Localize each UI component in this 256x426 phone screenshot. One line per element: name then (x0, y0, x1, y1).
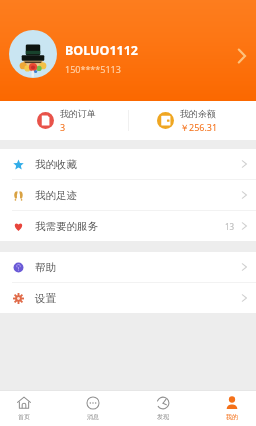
staticText: 我需要的服务 (35, 220, 98, 233)
staticText: 13 (225, 221, 235, 232)
staticText: BOLUO1112 (65, 42, 139, 59)
staticText: 我的足迹 (35, 189, 77, 202)
button[interactable]: 我的订单 (0, 101, 128, 140)
button[interactable]: 我需要的服务 (0, 211, 256, 241)
staticText: 设置 (35, 292, 56, 305)
button[interactable]: BOLUO1112 (0, 0, 256, 101)
staticText: 消息 (87, 413, 99, 421)
staticText: 我的 (226, 413, 238, 421)
button[interactable]: 我的收藏 (0, 149, 256, 179)
staticText: 首页 (18, 413, 30, 421)
staticText: 帮助 (35, 261, 56, 274)
staticText: 我的余额 (180, 108, 216, 119)
button[interactable]: 发现 (139, 391, 187, 426)
staticText: 3 (60, 121, 66, 133)
button[interactable]: 消息 (69, 391, 117, 426)
staticText: ￥256.31 (180, 121, 218, 133)
staticText: 150****5113 (65, 63, 121, 75)
button[interactable]: 我的 (208, 391, 256, 426)
button[interactable]: 我的余额 (128, 101, 256, 140)
staticText: 发现 (157, 413, 169, 421)
button[interactable]: 我的足迹 (0, 180, 256, 210)
button[interactable]: 设置 (0, 283, 256, 313)
button[interactable]: 首页 (0, 391, 48, 426)
staticText: 我的订单 (60, 108, 96, 119)
staticText: 我的收藏 (35, 158, 77, 171)
button[interactable]: 帮助 (0, 252, 256, 282)
other: Profile details (237, 48, 247, 64)
